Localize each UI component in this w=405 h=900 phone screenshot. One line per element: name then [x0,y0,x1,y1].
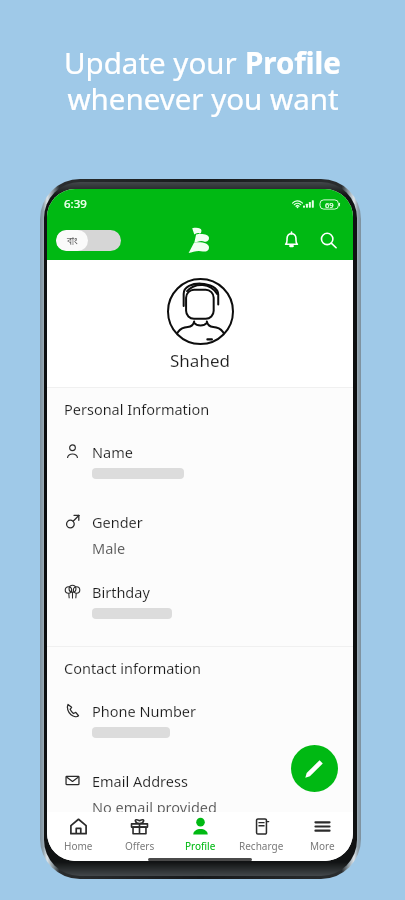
button[interactable]: Edit profile [291,745,338,792]
button[interactable]: Home [47,814,109,854]
staticText: Phone Number [92,701,197,721]
staticText: Name [92,442,133,462]
staticText: Birthday [92,582,150,602]
button[interactable]: Name [47,429,353,499]
button[interactable]: বাং [56,230,121,251]
staticText: Personal Information [64,399,210,419]
staticText: Gender [92,512,143,532]
staticText: 69 [325,200,334,210]
button[interactable]: Search [313,225,343,255]
button[interactable]: More [292,814,353,854]
staticText: whenever you want [67,78,339,118]
staticText: Contact information [64,658,202,678]
staticText: Profile [185,839,216,853]
button[interactable]: Offers [109,814,170,854]
staticText: Offers [125,839,155,853]
staticText: বাং [67,235,78,247]
staticText: More [310,839,335,853]
button[interactable]: Profile [170,814,231,854]
staticText: 6:39 [64,196,87,212]
button[interactable]: Phone Number [47,688,353,758]
staticText: No email provided [92,797,217,817]
staticText: Recharge [239,839,284,853]
button[interactable]: Recharge [231,814,292,854]
staticText: Email Address [92,771,188,791]
button[interactable]: Gender [47,499,353,569]
button[interactable]: Birthday [47,569,353,639]
staticText: Home [64,839,93,853]
staticText: Male [92,538,126,558]
button[interactable]: Notifications [276,225,306,255]
staticText: Update your [64,42,245,82]
button[interactable]: Email Address [47,758,353,828]
staticText: Profile [245,42,341,82]
staticText: Shahed [170,349,230,372]
